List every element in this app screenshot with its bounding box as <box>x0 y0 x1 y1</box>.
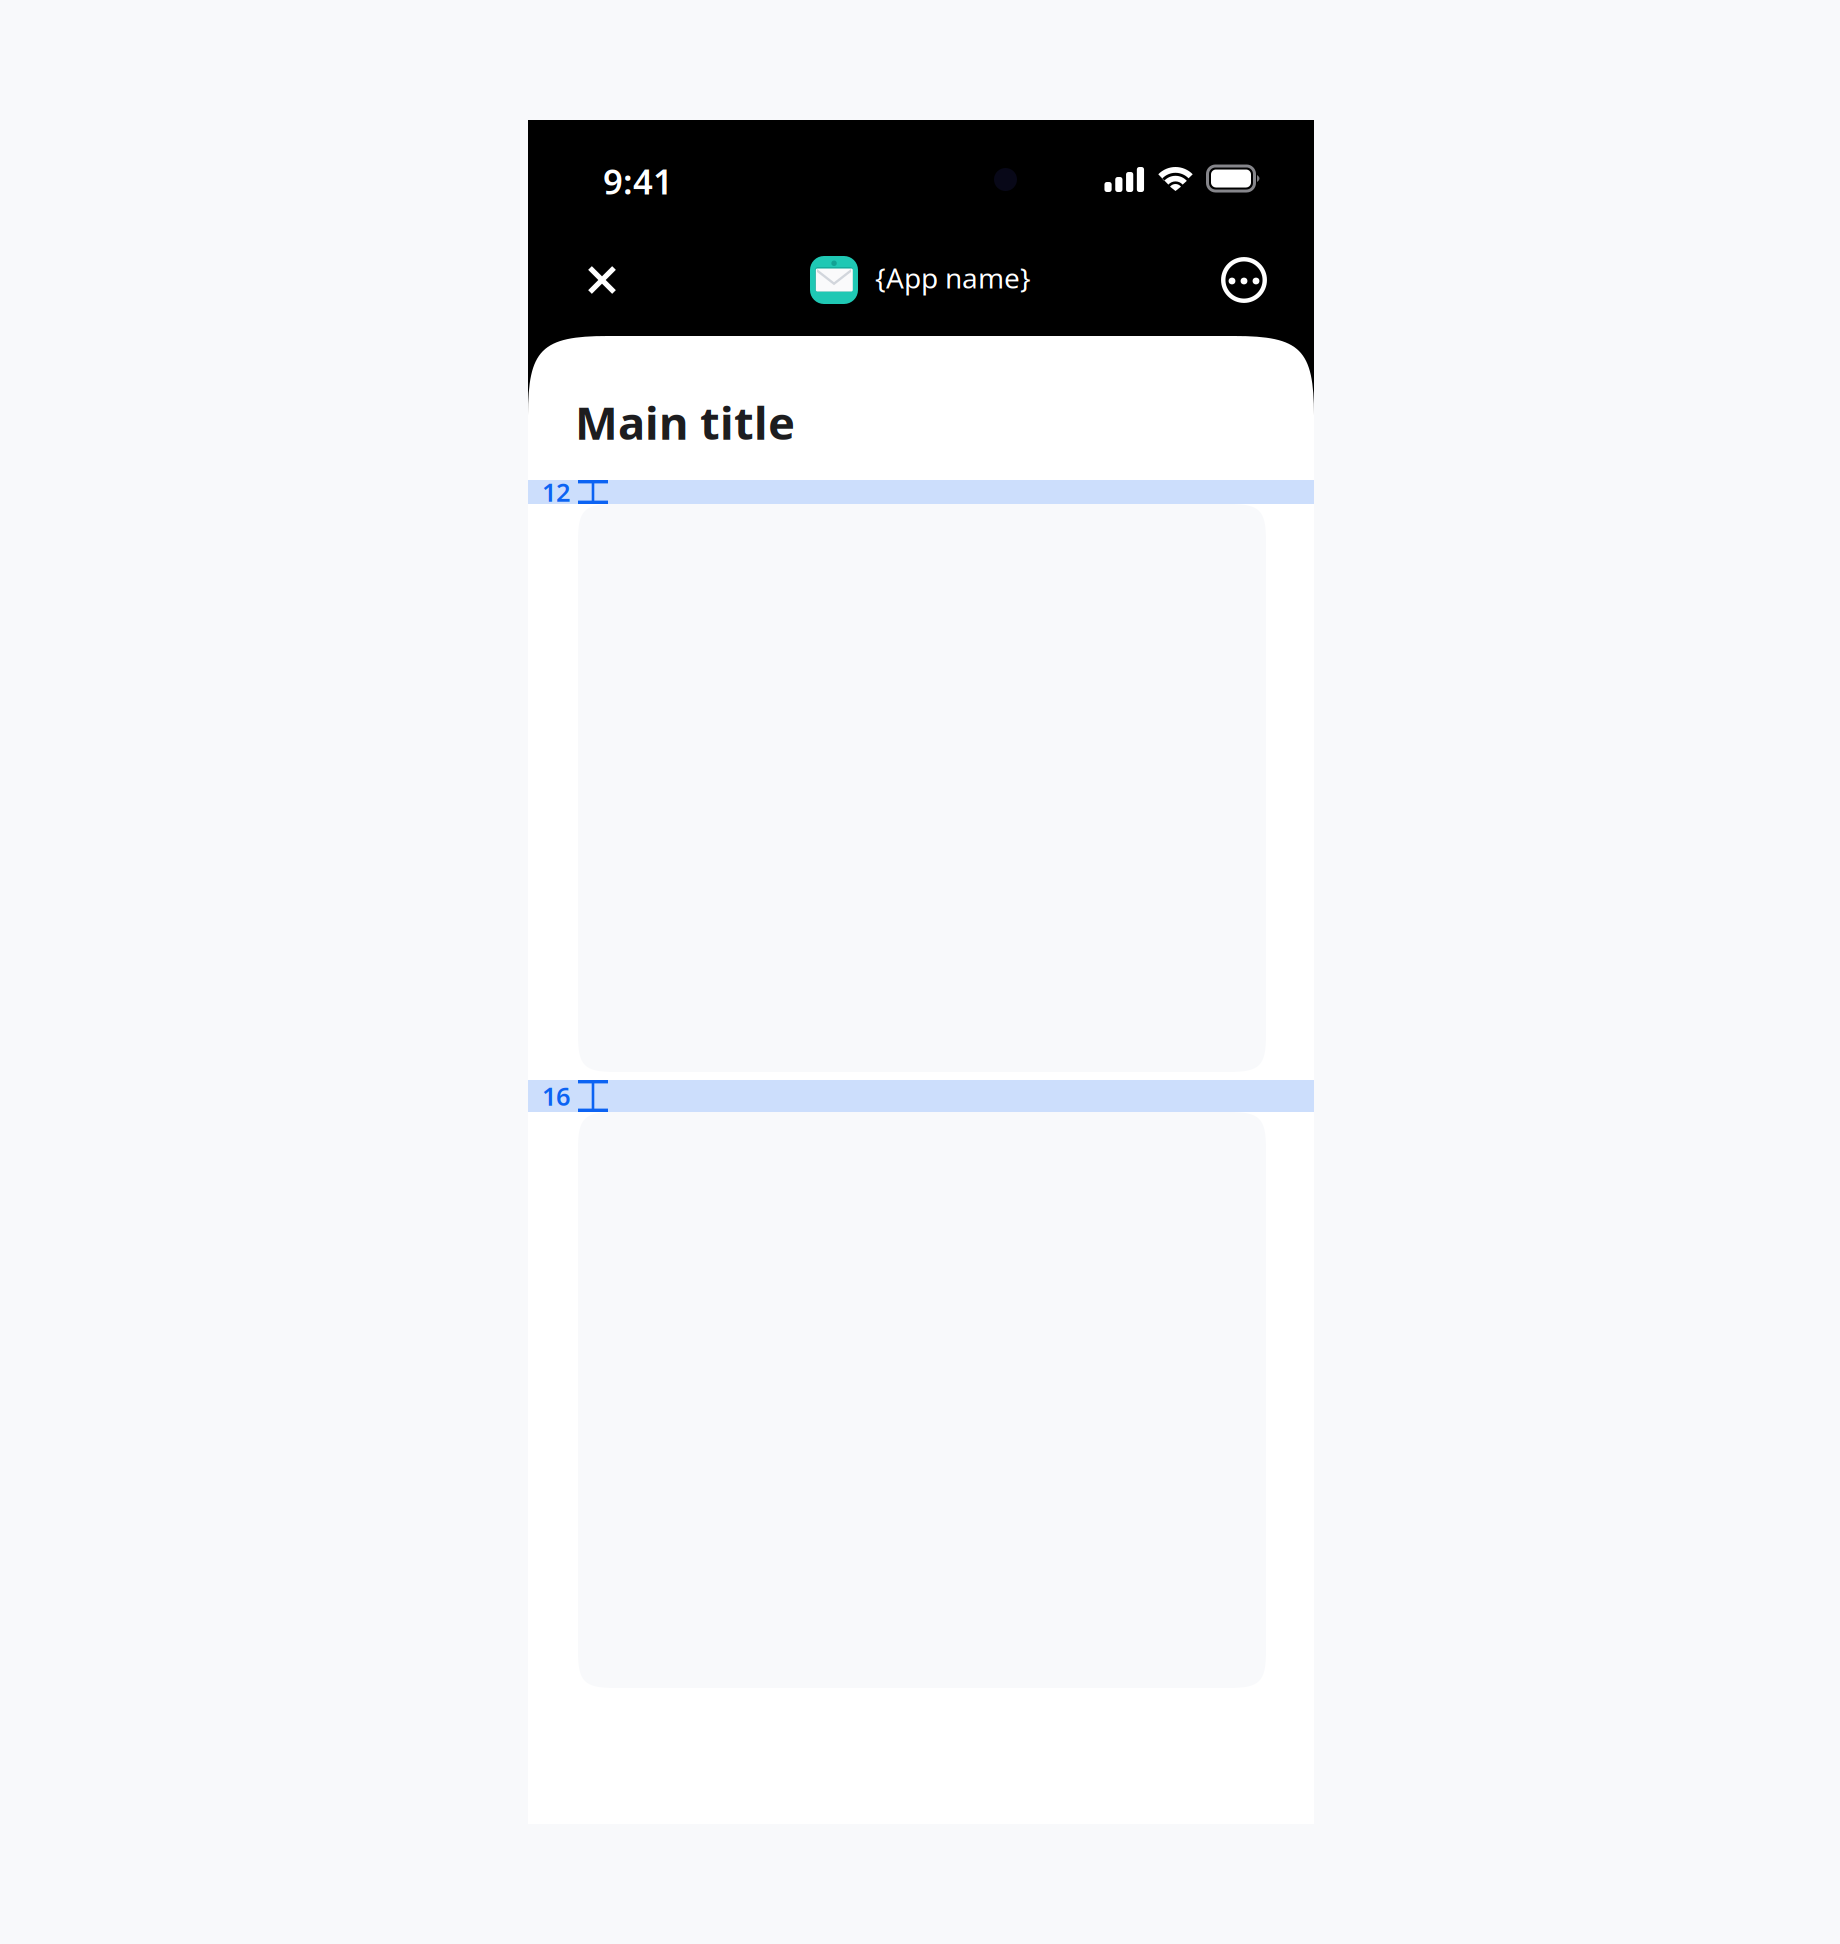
button[interactable]: More options <box>1218 254 1270 306</box>
staticText: 9:41 <box>603 158 673 204</box>
staticText: 16 <box>542 1079 570 1113</box>
staticText: {App name} <box>875 259 1031 296</box>
button[interactable]: Close <box>576 254 628 306</box>
staticText: 12 <box>542 475 570 509</box>
staticText: Main title <box>575 392 795 452</box>
